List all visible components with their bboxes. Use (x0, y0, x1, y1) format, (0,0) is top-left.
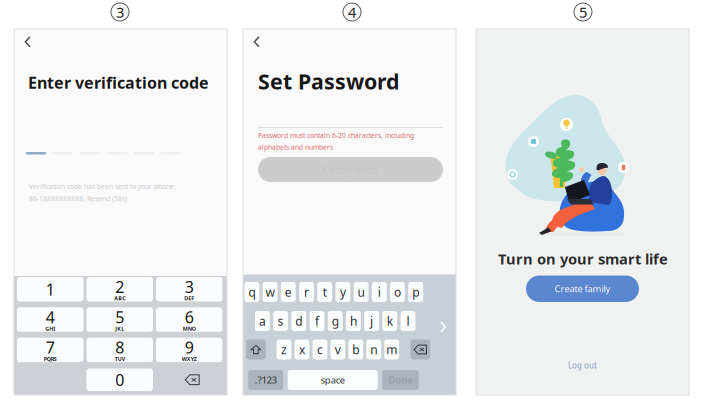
button[interactable]: .?123 (248, 370, 283, 390)
staticText: 9 (185, 337, 194, 358)
button[interactable]: i (372, 282, 387, 302)
button[interactable]: 0 (86, 368, 153, 391)
button[interactable]: l (401, 311, 415, 331)
staticText: ABC (114, 295, 125, 302)
button[interactable]: Create family (526, 275, 639, 302)
button[interactable]: q (244, 282, 259, 302)
staticText: PQRS (44, 355, 57, 362)
staticText: 3 (185, 276, 194, 297)
button[interactable]: o (390, 282, 405, 302)
button[interactable]: t (317, 282, 332, 302)
button[interactable]: 2 (86, 277, 153, 301)
staticText: n (370, 341, 377, 357)
staticText: w (266, 284, 275, 300)
staticText: MNO (183, 325, 196, 332)
staticText: v (335, 341, 341, 357)
button[interactable]: 7 (17, 338, 83, 362)
staticText: .?123 (255, 374, 277, 386)
button[interactable]: m (384, 339, 399, 359)
staticText: p (412, 284, 419, 300)
staticText: y (340, 284, 346, 300)
staticText: k (387, 313, 393, 329)
staticText: d (295, 313, 302, 329)
button[interactable]: a (255, 311, 270, 331)
staticText: Turn on your smart life (498, 249, 668, 268)
button[interactable]: 5 (86, 307, 153, 332)
button[interactable]: Shift (246, 339, 266, 359)
button[interactable]: Back (21, 33, 35, 51)
button[interactable]: v (330, 339, 345, 359)
staticText: 8 (115, 337, 124, 358)
staticText: 2 (115, 276, 124, 297)
button[interactable]: Done (382, 370, 419, 390)
staticText: DEF (184, 295, 194, 302)
staticText: a (259, 313, 266, 329)
button[interactable]: c (312, 339, 327, 359)
staticText: t (323, 284, 327, 300)
staticText: 3 (116, 2, 124, 22)
button[interactable]: 3 (156, 277, 222, 301)
button[interactable]: space (288, 370, 378, 390)
button[interactable]: Back (250, 33, 264, 51)
button[interactable]: r (299, 282, 314, 302)
staticText: 5 (579, 2, 587, 22)
button[interactable]: z (277, 339, 291, 359)
staticText: 5 (115, 306, 124, 328)
button[interactable]: Delete (410, 339, 430, 359)
button[interactable]: p (408, 282, 423, 302)
staticText: GHI (45, 325, 55, 332)
button[interactable]: n (366, 339, 381, 359)
button[interactable]: w (263, 282, 277, 302)
button[interactable]: j (364, 311, 379, 331)
staticText: 0 (115, 369, 124, 390)
button[interactable]: 4 (17, 307, 83, 332)
staticText: TUV (115, 355, 125, 362)
staticText: Enter verification code (28, 72, 209, 93)
staticText: JKL (115, 325, 124, 332)
button[interactable]: f (310, 311, 324, 331)
button[interactable]: Completed (258, 157, 443, 182)
button[interactable]: k (382, 311, 397, 331)
button[interactable]: d (291, 311, 306, 331)
button[interactable]: 1 (17, 277, 83, 301)
staticText: l (406, 313, 409, 329)
staticText: f (315, 313, 319, 329)
staticText: Done (388, 374, 412, 386)
staticText: Set Password (258, 67, 399, 95)
staticText: 7 (46, 337, 55, 358)
button[interactable]: 8 (86, 338, 153, 362)
staticText: z (281, 341, 287, 357)
staticText: Verification code has been sent to your … (29, 182, 176, 191)
staticText: i (378, 284, 381, 300)
button[interactable]: 6 (156, 307, 222, 332)
staticText: 4 (46, 306, 55, 328)
button[interactable]: g (328, 311, 343, 331)
button[interactable]: Log out (568, 360, 597, 371)
staticText: m (386, 341, 397, 357)
button[interactable]: b (348, 339, 363, 359)
staticText: b (352, 341, 359, 357)
button[interactable]: 9 (156, 338, 222, 362)
staticText: g (332, 313, 339, 329)
staticText: 6 (185, 306, 194, 328)
button[interactable]: s (273, 311, 288, 331)
staticText: h (350, 313, 357, 329)
button[interactable]: e (281, 282, 296, 302)
staticText: o (394, 284, 401, 300)
button[interactable]: x (295, 339, 309, 359)
staticText: 86-18888888888, Resend (58s) (29, 194, 127, 203)
button[interactable]: h (346, 311, 361, 331)
staticText: c (317, 341, 323, 357)
staticText: e (285, 284, 292, 300)
staticText: space (321, 374, 345, 386)
button[interactable]: y (335, 282, 350, 302)
staticText: u (358, 284, 365, 300)
staticText: j (370, 313, 373, 329)
staticText: q (248, 284, 255, 300)
button[interactable]: u (354, 282, 368, 302)
staticText: x (299, 341, 305, 357)
button[interactable]: Delete (156, 368, 222, 391)
staticText: Password must contain 6-20 characters, i… (258, 131, 414, 140)
staticText: alphabets and numbers (258, 143, 333, 152)
staticText: 1 (46, 279, 55, 300)
